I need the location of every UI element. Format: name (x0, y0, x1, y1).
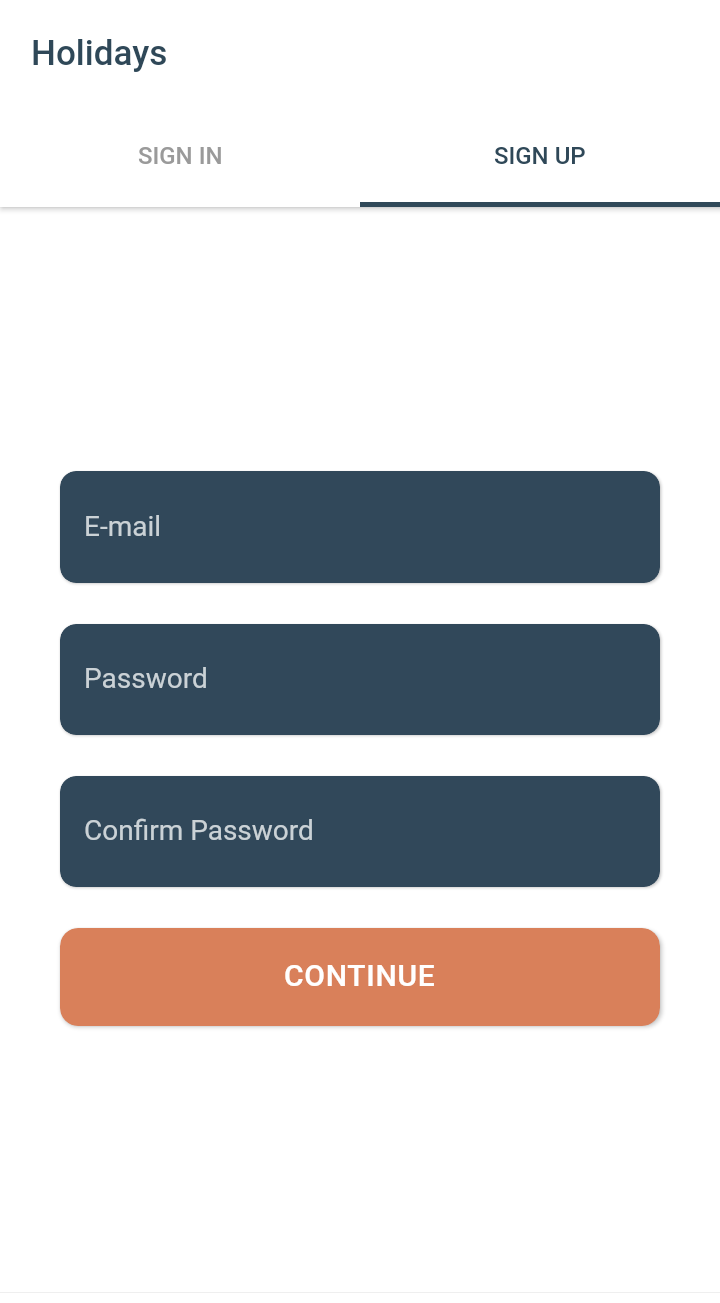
button[interactable]: SIGN UP (360, 105, 720, 207)
button[interactable]: CONTINUE (60, 928, 660, 1026)
staticText: Password (84, 662, 208, 695)
staticText: SIGN IN (138, 142, 223, 170)
button[interactable]: Confirm Password (60, 776, 660, 887)
staticText: E-mail (84, 510, 162, 543)
staticText: CONTINUE (284, 958, 436, 993)
staticText: Holidays (31, 33, 168, 74)
button[interactable]: E-mail (60, 471, 660, 583)
staticText: SIGN UP (494, 142, 586, 170)
staticText: Confirm Password (84, 814, 314, 847)
button[interactable]: Password (60, 624, 660, 735)
button[interactable]: SIGN IN (0, 105, 360, 207)
